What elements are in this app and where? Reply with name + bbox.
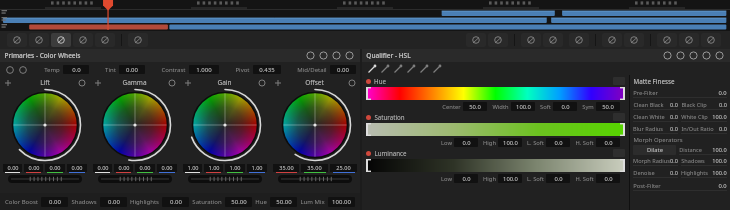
button[interactable]: picker4 xyxy=(419,64,429,74)
button[interactable]: hdr1 xyxy=(319,51,328,60)
button[interactable]: e xyxy=(701,33,721,47)
button[interactable]: Morph Radius xyxy=(633,156,678,165)
button[interactable]: 0.00 xyxy=(162,197,189,207)
button[interactable]: Offset wheel xyxy=(278,88,352,162)
button[interactable]: Gain options xyxy=(258,79,266,87)
button[interactable]: b xyxy=(624,33,644,47)
button[interactable]: 0.00 xyxy=(3,164,22,172)
button[interactable]: tool0 xyxy=(7,33,27,47)
button[interactable]: 25.00 xyxy=(330,164,357,172)
button[interactable]: 50.00 xyxy=(270,197,297,207)
button[interactable]: 0.00 xyxy=(135,164,155,172)
button[interactable]: q2 xyxy=(689,51,698,60)
button[interactable]: tool1 xyxy=(29,33,49,47)
button[interactable]: hdr0 xyxy=(306,51,315,60)
button[interactable]: c xyxy=(657,33,677,47)
button[interactable]: 35.00 xyxy=(273,164,299,172)
button[interactable]: Offset master xyxy=(278,175,352,183)
button[interactable]: Blur Radius xyxy=(633,124,678,133)
button[interactable]: picker5 xyxy=(432,64,442,74)
button[interactable]: Gamma master xyxy=(98,175,172,183)
button[interactable]: 0.00 xyxy=(114,164,133,172)
button[interactable]: Lift master xyxy=(8,175,82,183)
button[interactable]: tool4 xyxy=(95,33,115,47)
button[interactable]: Gain master xyxy=(188,175,262,183)
button[interactable]: 0.00 xyxy=(100,197,127,207)
button[interactable]: 0.0 xyxy=(553,102,577,111)
button[interactable]: 100.00 xyxy=(328,197,355,207)
button[interactable]: 50.0 xyxy=(596,102,620,111)
button[interactable]: 0.00 xyxy=(24,164,43,172)
button[interactable]: Distance xyxy=(679,145,727,154)
button[interactable]: Lift options xyxy=(78,79,86,87)
button[interactable]: Offset reset xyxy=(274,79,282,87)
button[interactable]: Shadows xyxy=(681,156,727,165)
button[interactable]: q0 xyxy=(663,51,672,60)
button[interactable]: 1.000 xyxy=(189,65,219,74)
button[interactable]: 0.00 xyxy=(157,164,177,172)
button[interactable]: 0.435 xyxy=(253,65,281,74)
button[interactable]: 0.0 xyxy=(596,174,620,183)
button[interactable]: 50.00 xyxy=(225,197,252,207)
button[interactable]: 0.0 xyxy=(454,138,478,147)
button[interactable]: Gamma options xyxy=(168,79,176,87)
button[interactable]: hdr3 xyxy=(345,51,354,60)
button[interactable]: picker3 xyxy=(406,64,416,74)
button[interactable]: q3 xyxy=(702,51,711,60)
button[interactable]: Luminance enable xyxy=(366,151,371,156)
button[interactable]: 0.0 xyxy=(63,65,89,74)
button[interactable]: Gamma reset xyxy=(94,79,102,87)
button[interactable]: Lift wheel xyxy=(8,88,82,162)
button[interactable]: White Clip xyxy=(681,112,727,121)
button[interactable]: Pre-Filter xyxy=(633,88,727,97)
button[interactable]: 0.00 xyxy=(41,197,68,207)
button[interactable]: 0.0 xyxy=(546,174,570,183)
button[interactable]: 100.0 xyxy=(498,138,522,147)
button[interactable]: Dilate xyxy=(633,145,676,155)
button[interactable]: eye xyxy=(543,33,563,47)
button[interactable]: 1.00 xyxy=(204,164,223,172)
button[interactable]: tool3 xyxy=(73,33,93,47)
button[interactable]: 0.0 xyxy=(596,138,620,147)
button[interactable]: grid xyxy=(128,33,148,47)
button[interactable]: Hue enable xyxy=(366,79,371,84)
button[interactable]: picker0 xyxy=(367,64,377,74)
button[interactable]: hdr2 xyxy=(332,51,341,60)
button[interactable]: Clean White xyxy=(633,112,678,121)
button[interactable]: 100.0 xyxy=(498,174,522,183)
button[interactable]: Highlights xyxy=(681,168,727,177)
button[interactable]: q1 xyxy=(676,51,685,60)
button[interactable]: Lift reset xyxy=(4,79,12,87)
button[interactable]: 0.0 xyxy=(546,138,570,147)
button[interactable]: a xyxy=(602,33,622,47)
button[interactable]: Clean Black xyxy=(633,100,678,109)
button[interactable]: Offset options xyxy=(348,79,356,87)
button[interactable]: 100.0 xyxy=(511,102,535,111)
button[interactable]: mid0 xyxy=(466,33,486,47)
button[interactable]: Black Clip xyxy=(681,100,727,109)
button[interactable]: picker xyxy=(17,64,28,75)
button[interactable]: picker1 xyxy=(380,64,390,74)
button[interactable]: Post-Filter xyxy=(633,181,727,190)
button[interactable]: 0.00 xyxy=(93,164,112,172)
button[interactable]: 1.00 xyxy=(247,164,267,172)
button[interactable]: 0.00 xyxy=(330,65,356,74)
button[interactable]: d xyxy=(679,33,699,47)
button[interactable]: 1.00 xyxy=(183,164,202,172)
button[interactable]: Saturation enable xyxy=(366,115,371,120)
button[interactable]: Gain reset xyxy=(184,79,192,87)
button[interactable]: 0.0 xyxy=(454,174,478,183)
button[interactable]: picker2 xyxy=(393,64,403,74)
button[interactable]: 0.00 xyxy=(119,65,145,74)
button[interactable]: q4 xyxy=(715,51,724,60)
button[interactable]: node xyxy=(569,33,589,47)
button[interactable]: 35.00 xyxy=(301,164,328,172)
button[interactable]: Gamma wheel xyxy=(98,88,172,162)
button[interactable]: Denoise xyxy=(633,168,678,177)
button[interactable]: 0.00 xyxy=(45,164,65,172)
button[interactable]: tool2 xyxy=(51,33,71,47)
button[interactable]: In/Out Ratio xyxy=(681,124,727,133)
button[interactable]: 0.00 xyxy=(67,164,87,172)
button[interactable]: 50.0 xyxy=(463,102,487,111)
